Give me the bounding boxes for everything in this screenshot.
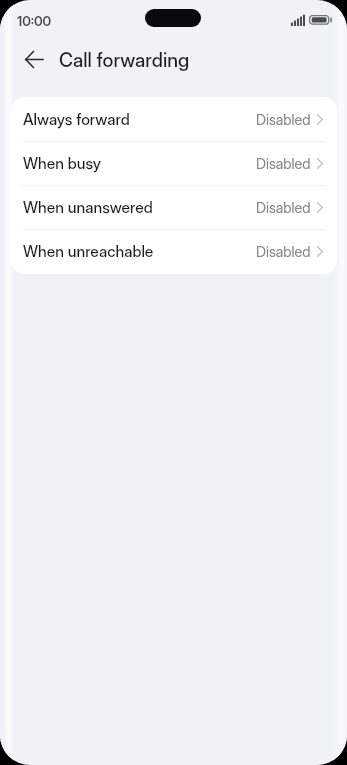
button[interactable]: Back <box>12 38 55 81</box>
staticText: When busy <box>23 154 102 173</box>
staticText: When unanswered <box>23 198 153 217</box>
button[interactable]: Always forward <box>11 97 337 141</box>
staticText: Disabled <box>256 155 311 173</box>
staticText: 10:00 <box>17 13 52 29</box>
staticText: Call forwarding <box>59 48 190 71</box>
button[interactable]: When unreachable <box>11 229 337 273</box>
button[interactable]: When busy <box>11 141 337 185</box>
staticText: Disabled <box>256 243 311 261</box>
staticText: Disabled <box>256 199 311 217</box>
staticText: Disabled <box>256 111 311 129</box>
button[interactable]: When unanswered <box>11 185 337 229</box>
staticText: Always forward <box>23 110 130 129</box>
staticText: When unreachable <box>23 242 154 261</box>
